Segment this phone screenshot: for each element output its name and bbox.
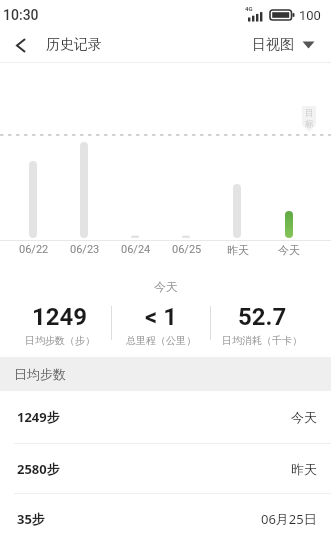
staticText: < 1 bbox=[145, 303, 177, 331]
staticText: 今天 bbox=[278, 243, 300, 257]
staticText: 日均步数（步） bbox=[25, 334, 95, 347]
staticText: 06/25 bbox=[172, 243, 202, 256]
staticText: 100 bbox=[299, 8, 321, 23]
staticText: 06/22 bbox=[19, 243, 49, 256]
staticText: 06/24 bbox=[121, 243, 151, 256]
staticText: 昨天 bbox=[227, 243, 249, 257]
staticText: 标 bbox=[305, 118, 314, 129]
staticText: 今天 bbox=[154, 279, 178, 294]
staticText: 2580步 bbox=[17, 460, 60, 478]
staticText: 目 bbox=[305, 107, 314, 118]
button[interactable]: 1249 bbox=[5, 303, 115, 347]
staticText: 10:30 bbox=[3, 7, 39, 23]
staticText: 52.7 bbox=[238, 303, 287, 331]
button[interactable]: 日视图 bbox=[252, 36, 315, 54]
staticText: 总里程（公里） bbox=[126, 334, 196, 347]
button[interactable]: 历史记录 bbox=[0, 36, 102, 54]
staticText: 06月25日 bbox=[261, 510, 317, 528]
staticText: 4G bbox=[245, 5, 253, 12]
staticText: 35步 bbox=[17, 510, 45, 528]
staticText: 日均消耗（千卡） bbox=[222, 334, 302, 347]
staticText: 今天 bbox=[291, 409, 317, 425]
staticText: 06/23 bbox=[70, 243, 100, 256]
staticText: 昨天 bbox=[291, 461, 317, 477]
staticText: 1249步 bbox=[17, 408, 60, 426]
button[interactable]: 1249步 bbox=[17, 391, 317, 443]
button[interactable]: < 1 bbox=[106, 303, 216, 347]
staticText: 日视图 bbox=[252, 36, 294, 54]
button[interactable]: 52.7 bbox=[207, 303, 317, 347]
staticText: 日均步数 bbox=[14, 366, 66, 382]
staticText: 历史记录 bbox=[46, 36, 102, 54]
button[interactable]: 35步 bbox=[17, 494, 317, 543]
button[interactable]: 2580步 bbox=[17, 444, 317, 493]
staticText: 1249 bbox=[32, 303, 88, 331]
